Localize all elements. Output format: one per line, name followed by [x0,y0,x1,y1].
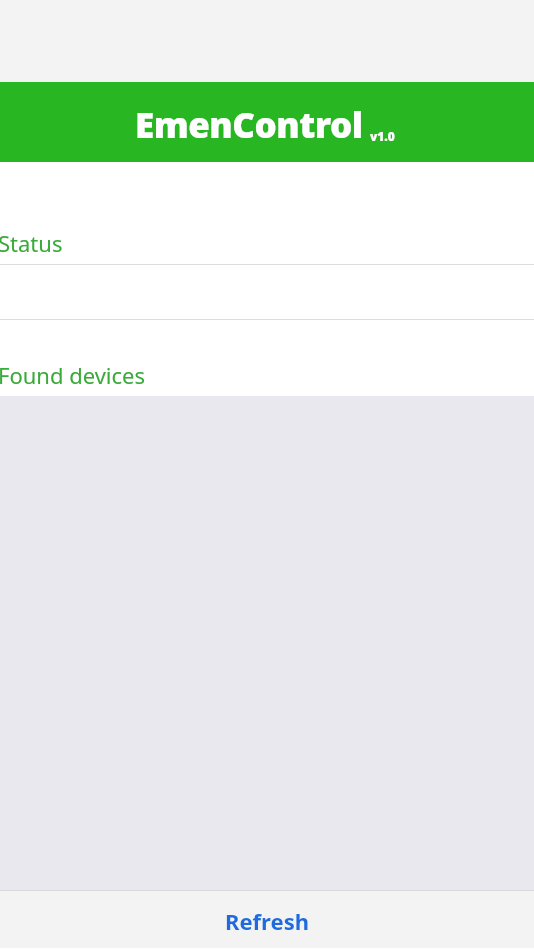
staticText: Found devices [0,360,146,390]
staticText: Refresh [225,906,309,936]
button[interactable]: Refresh [0,890,534,948]
staticText: Status [0,228,63,258]
staticText: EmenControl [135,101,363,149]
staticText: v1.0 [370,128,395,144]
